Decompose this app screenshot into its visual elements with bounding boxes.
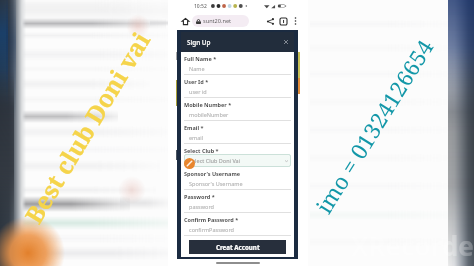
staticText: Name	[189, 65, 205, 72]
staticText: Password *	[184, 193, 215, 200]
button[interactable]: Select Club Doni Vai	[184, 154, 291, 167]
staticText: Mobile Number *	[184, 101, 232, 108]
staticText: password	[189, 203, 214, 210]
staticText: Sponsor's Username	[189, 180, 243, 187]
staticText: User Id *	[184, 78, 209, 85]
button[interactable]: More options	[290, 16, 300, 26]
staticText: imo = 01324126654	[308, 33, 440, 219]
staticText: user id	[189, 88, 207, 95]
staticText: 10:52	[194, 3, 207, 10]
staticText: Sponsor's Username	[184, 170, 241, 177]
button[interactable]: Tabs	[278, 16, 289, 27]
staticText: Select Club Doni Vai	[189, 157, 241, 164]
staticText: XRecorder	[351, 228, 474, 263]
staticText: sunt20.net	[203, 17, 232, 25]
staticText: Email *	[184, 124, 204, 131]
staticText: Full Name *	[184, 55, 217, 62]
staticText: Sign Up	[187, 38, 211, 47]
button[interactable]: sunt20.net	[192, 15, 249, 27]
staticText: confirmPassword	[189, 226, 234, 233]
button[interactable]: Close	[282, 38, 290, 46]
staticText: Confirm Password *	[184, 216, 239, 223]
staticText: mobileNumber	[189, 111, 229, 118]
staticText: Creat Account	[216, 243, 260, 251]
button[interactable]: Creat Account	[189, 240, 286, 254]
button[interactable]: Share	[265, 16, 276, 27]
button[interactable]: Home	[179, 15, 191, 27]
staticText: email	[189, 134, 204, 141]
staticText: Best club Doni vai	[17, 26, 157, 229]
staticText: Select Club *	[184, 147, 219, 154]
